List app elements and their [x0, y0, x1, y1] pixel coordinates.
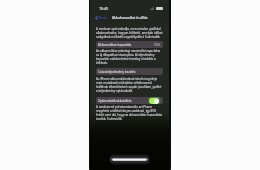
staticText: Csúcsteljesítmény kezelés — [98, 70, 136, 74]
staticText: A rendszer optimalizálja, nem minden gra… — [96, 27, 163, 39]
button[interactable]: Csúcsteljesítmény kezelés — [96, 68, 163, 75]
staticText: Optimalizált akkutöltés — [98, 99, 132, 103]
staticText: Az akkumulátor jelenlegi maximális kapac… — [96, 49, 163, 65]
staticText: A rendszerrel prémiumtanulás az iPhone m… — [96, 105, 163, 121]
staticText: 10:45 — [99, 6, 109, 11]
button[interactable]: Optimalizált akkutöltés — [96, 97, 163, 104]
staticText: Akkumulátor kapacitás — [98, 43, 132, 47]
button[interactable]: Vissza — [95, 16, 108, 20]
button[interactable]: Akkumulátor kapacitás — [96, 41, 163, 48]
staticText: 90% — [154, 43, 161, 47]
staticText: Az iPhone akkumulátorának tárolt mag ide… — [96, 77, 163, 93]
staticText: Akkuhasználat és állás — [112, 16, 148, 20]
staticText: Vissza — [98, 16, 108, 20]
button[interactable]: Optimalizált akkutöltés kapcsoló — [147, 97, 161, 104]
